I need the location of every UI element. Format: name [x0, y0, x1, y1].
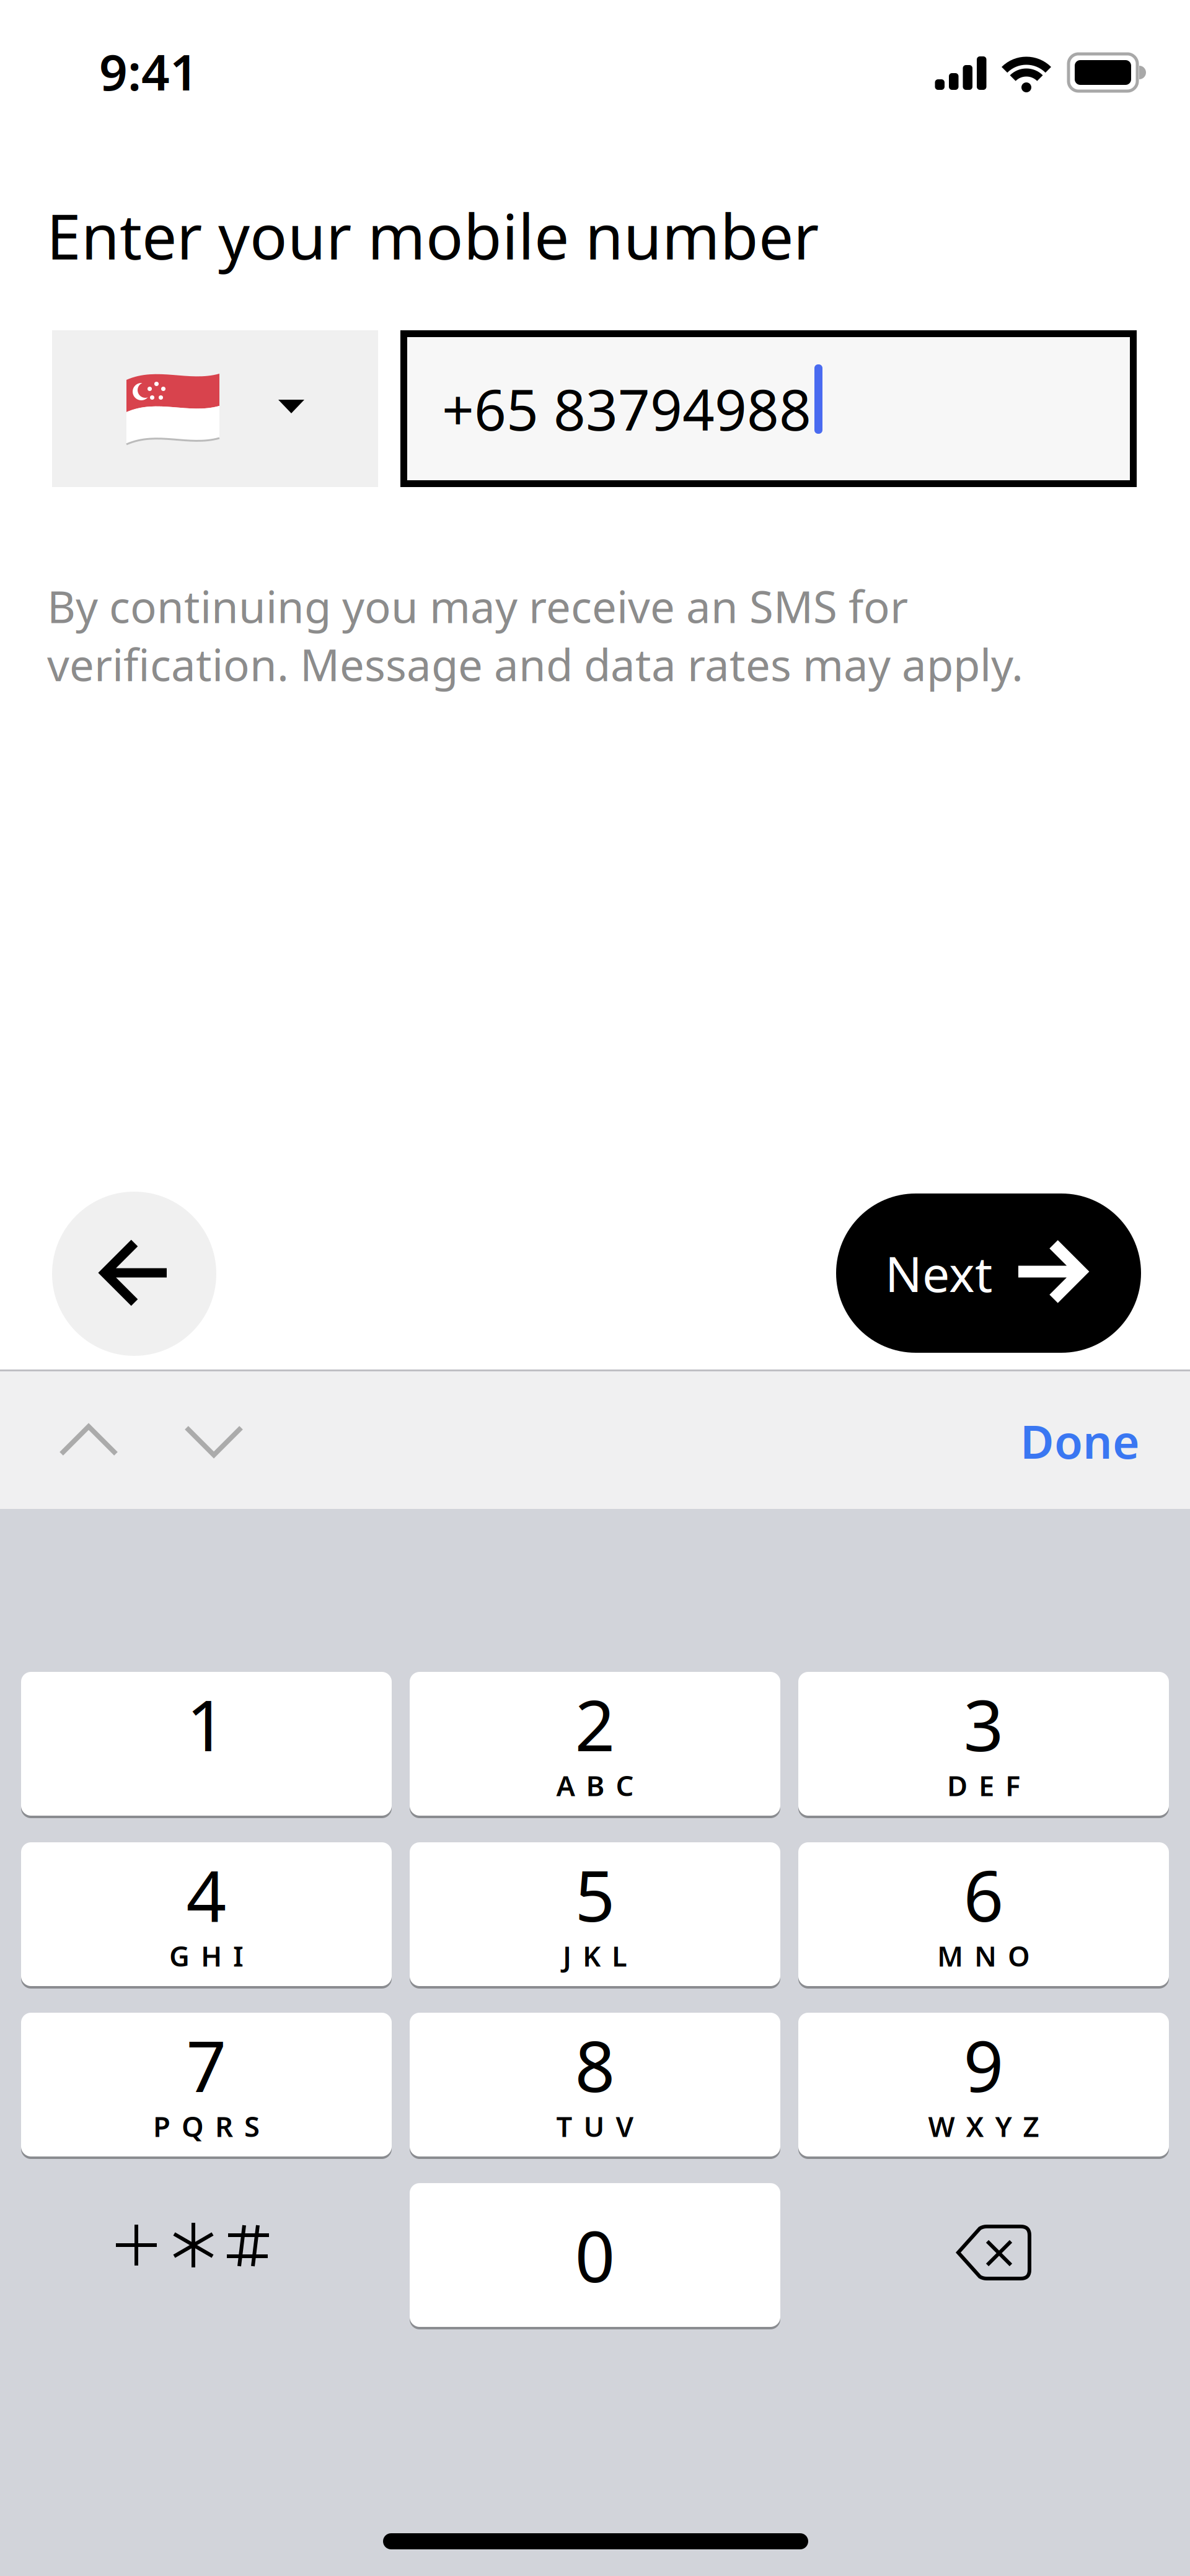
staticText: 2	[575, 1677, 615, 1771]
button[interactable]: 3	[798, 1672, 1169, 1818]
staticText: By continuing you may receive an SMS for…	[47, 577, 1023, 693]
button[interactable]: Done	[892, 1371, 1140, 1511]
staticText: 9	[963, 2018, 1004, 2111]
staticText: 7	[186, 2018, 227, 2111]
button[interactable]: 6	[798, 1842, 1169, 1989]
button[interactable]: 8	[410, 2013, 780, 2159]
button[interactable]: Select country code	[52, 330, 378, 487]
staticText: WXYZ	[928, 2107, 1039, 2145]
staticText: 6	[963, 1848, 1004, 1941]
staticText: 3	[963, 1677, 1004, 1771]
staticText: PQRS	[153, 2107, 260, 2145]
button[interactable]: Phone number, +65 83794988	[400, 330, 1137, 487]
button[interactable]: 1	[21, 1672, 392, 1818]
staticText: +65 83794988	[442, 371, 811, 446]
button[interactable]: 9	[798, 2013, 1169, 2159]
staticText: Next	[885, 1241, 992, 1306]
staticText: 9:41	[99, 38, 198, 104]
button[interactable]: Previous field	[54, 1425, 123, 1455]
button[interactable]: 5	[410, 1842, 780, 1989]
button[interactable]: Next	[836, 1193, 1141, 1353]
staticText: 5	[575, 1848, 615, 1941]
button[interactable]: Delete	[798, 2183, 1169, 2327]
staticText: MNO	[937, 1937, 1030, 1974]
button[interactable]: 7	[21, 2013, 392, 2159]
staticText: 0	[575, 2208, 615, 2302]
staticText: JKL	[563, 1937, 627, 1974]
staticText: ABC	[556, 1767, 634, 1804]
button[interactable]: 2	[410, 1672, 780, 1818]
staticText: 1	[186, 1677, 227, 1771]
button[interactable]: Next field	[179, 1426, 249, 1456]
button[interactable]: 4	[21, 1842, 392, 1989]
button[interactable]: 0	[410, 2183, 780, 2329]
staticText: Done	[1020, 1410, 1140, 1471]
staticText: Enter your mobile number	[46, 194, 819, 277]
button[interactable]: Symbols	[21, 2183, 392, 2327]
staticText: DEF	[947, 1767, 1020, 1804]
button[interactable]: Back	[52, 1192, 216, 1356]
staticText: GHI	[169, 1937, 244, 1974]
staticText: TUV	[556, 2107, 634, 2145]
staticText: 8	[575, 2018, 615, 2111]
staticText: 4	[186, 1848, 227, 1941]
